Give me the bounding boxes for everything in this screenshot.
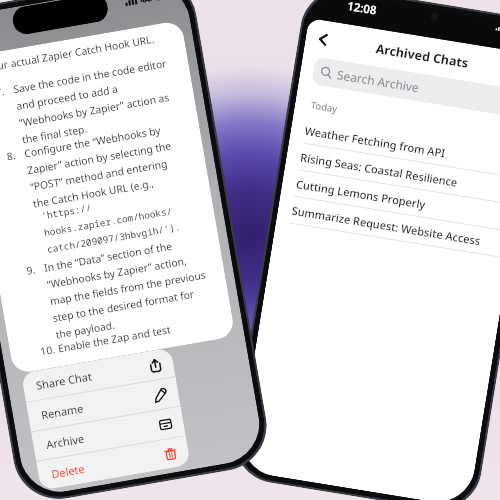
- staticText: Search Archive: [336, 66, 420, 95]
- staticText: Archived Chats: [374, 40, 470, 72]
- staticText: In the “Data” section of the “Webhooks b…: [43, 234, 213, 342]
- staticText: Rising Seas: Coastal Resilience: [299, 149, 459, 190]
- staticText: 9.: [25, 261, 45, 278]
- button[interactable]: Share Chat: [21, 347, 175, 402]
- button[interactable]: Cutting Lemons Properly: [280, 168, 500, 232]
- other: Back: [312, 28, 335, 51]
- staticText: Rename: [40, 400, 85, 422]
- button[interactable]: Summarize Request: Website Access: [276, 195, 500, 259]
- other: Rename: [152, 387, 169, 403]
- button[interactable]: Rising Seas: Coastal Resilience: [285, 141, 500, 206]
- staticText: our actual Zapier Catch Hook URL.: [0, 32, 156, 74]
- staticText: Archive: [45, 430, 86, 452]
- staticText: 7.: [0, 82, 15, 99]
- button[interactable]: Delete: [36, 436, 191, 490]
- other: Delete: [163, 446, 179, 462]
- staticText: Delete: [50, 461, 86, 481]
- staticText: Save the code in the code editor and pro…: [12, 56, 176, 146]
- staticText: 12:08: [346, 0, 378, 19]
- staticText: 'https://: [40, 201, 93, 222]
- staticText: Today: [310, 98, 339, 115]
- staticText: 8.: [5, 147, 26, 163]
- button[interactable]: Back: [312, 28, 335, 51]
- staticText: Summarize Request: Website Access: [291, 203, 482, 248]
- button[interactable]: Search Archive: [311, 56, 500, 118]
- button[interactable]: Archive: [31, 407, 186, 461]
- staticText: Configure the “Webhooks by Zapier” actio…: [23, 122, 178, 211]
- staticText: catch/209097/3hbvgih/').: [46, 220, 182, 256]
- staticText: 10.: [39, 342, 59, 359]
- staticText: Share Chat: [35, 368, 93, 393]
- staticText: Weather Fetching from API: [304, 123, 447, 160]
- staticText: Cutting Lemons Properly: [295, 176, 427, 212]
- staticText: hooks.zapier.com/hooks/: [43, 204, 173, 239]
- other: Share Chat: [147, 357, 163, 373]
- button[interactable]: Weather Fetching from API: [289, 115, 500, 179]
- staticText: Enable the Zap and test: [57, 322, 172, 355]
- other: Archive: [157, 416, 174, 432]
- button[interactable]: Rename: [26, 377, 181, 431]
